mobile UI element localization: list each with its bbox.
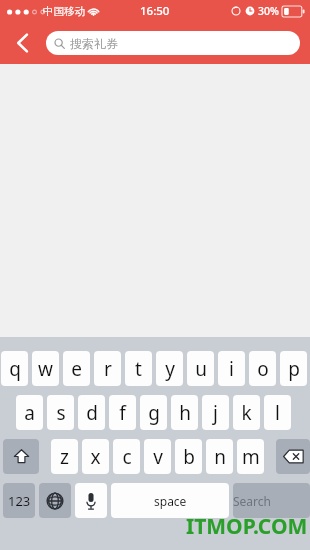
staticText: 30%	[258, 4, 279, 18]
button[interactable]: Shift	[3, 439, 39, 474]
staticText: r	[104, 356, 112, 382]
staticText: h	[179, 400, 191, 426]
staticText: q	[9, 356, 21, 382]
button[interactable]: Voice input	[75, 483, 107, 518]
button[interactable]: j	[202, 395, 229, 430]
button[interactable]: v	[144, 439, 171, 474]
button[interactable]: m	[237, 439, 264, 474]
button[interactable]: l	[264, 395, 291, 430]
staticText: 中国移动	[43, 5, 85, 18]
button[interactable]: c	[113, 439, 140, 474]
staticText: d	[86, 400, 98, 426]
staticText: t	[135, 356, 142, 382]
staticText: a	[24, 400, 35, 426]
button[interactable]: z	[51, 439, 78, 474]
staticText: j	[213, 400, 218, 426]
staticText: e	[71, 356, 82, 382]
staticText: y	[165, 356, 175, 382]
staticText: 16:50	[140, 3, 170, 19]
staticText: f	[119, 400, 126, 426]
staticText: x	[90, 444, 101, 470]
button[interactable]: w	[32, 351, 59, 386]
button[interactable]: f	[109, 395, 136, 430]
staticText: k	[241, 400, 252, 426]
button[interactable]: space	[111, 483, 229, 518]
button[interactable]: d	[78, 395, 105, 430]
button[interactable]: o	[249, 351, 276, 386]
staticText: 123	[8, 492, 31, 510]
staticText: ITMOP.COM	[186, 512, 308, 541]
staticText: l	[275, 400, 280, 426]
button[interactable]: b	[175, 439, 202, 474]
button[interactable]: u	[187, 351, 214, 386]
button[interactable]: Change keyboard	[39, 483, 71, 518]
button[interactable]: x	[82, 439, 109, 474]
button[interactable]: e	[63, 351, 90, 386]
button[interactable]: h	[171, 395, 198, 430]
staticText: s	[56, 400, 66, 426]
button[interactable]: Search	[233, 483, 310, 518]
button[interactable]: k	[233, 395, 260, 430]
staticText: z	[60, 444, 69, 470]
button[interactable]: g	[140, 395, 167, 430]
button[interactable]: a	[16, 395, 43, 430]
staticText: n	[214, 444, 226, 470]
staticText: i	[229, 356, 234, 382]
button[interactable]: Back	[0, 22, 46, 64]
staticText: p	[288, 356, 300, 382]
staticText: space	[154, 493, 187, 509]
staticText: w	[38, 356, 53, 382]
button[interactable]: 搜索礼券	[46, 31, 300, 55]
button[interactable]: p	[280, 351, 307, 386]
button[interactable]: y	[156, 351, 183, 386]
button[interactable]: i	[218, 351, 245, 386]
staticText: u	[195, 356, 207, 382]
staticText: o	[257, 356, 269, 382]
staticText: c	[122, 444, 132, 470]
button[interactable]: n	[206, 439, 233, 474]
staticText: m	[242, 444, 260, 470]
button[interactable]: q	[1, 351, 28, 386]
button[interactable]: r	[94, 351, 121, 386]
button[interactable]: 123	[3, 483, 35, 518]
button[interactable]: Delete	[276, 439, 310, 474]
staticText: 搜索礼券	[70, 36, 118, 51]
button[interactable]: t	[125, 351, 152, 386]
staticText: b	[183, 444, 195, 470]
staticText: v	[153, 444, 163, 470]
staticText: g	[148, 400, 160, 426]
staticText: Search	[233, 493, 310, 509]
button[interactable]: s	[47, 395, 74, 430]
